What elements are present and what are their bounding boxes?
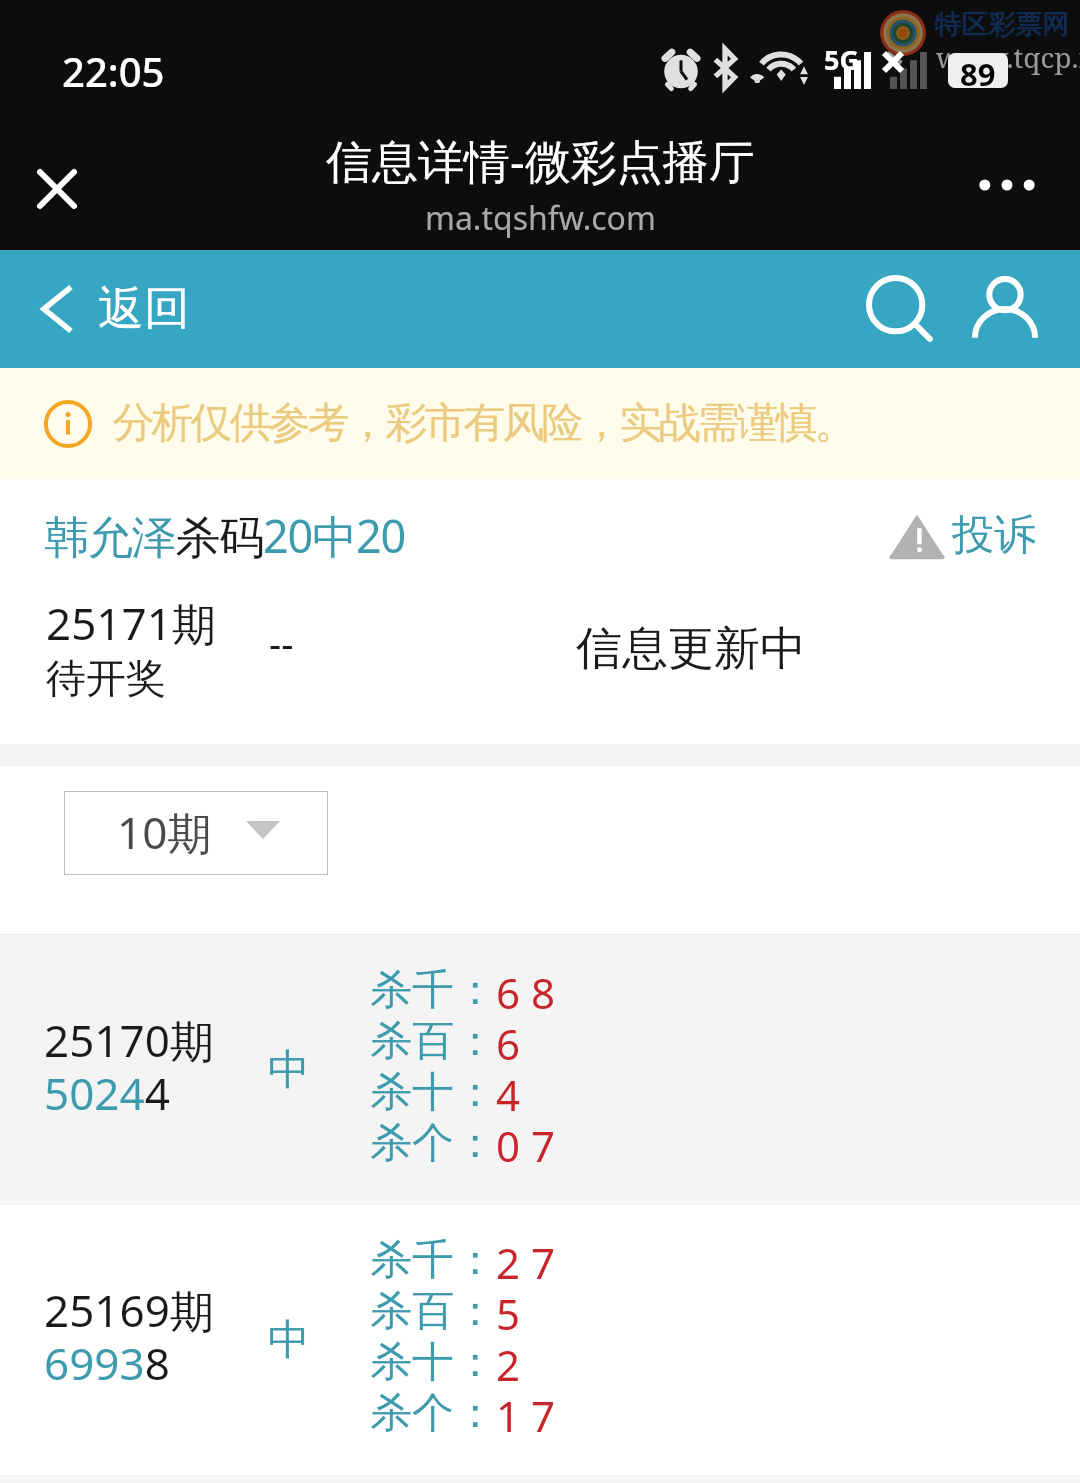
staticText: 5G	[824, 41, 859, 78]
staticText: 5	[496, 1285, 521, 1336]
staticText: 4	[496, 1066, 521, 1117]
staticText: 杀千：	[370, 964, 496, 1015]
button[interactable]: 投诉	[890, 509, 1036, 562]
staticText: 待开奖	[46, 653, 166, 703]
button[interactable]: 返回	[40, 280, 190, 338]
button[interactable]: More options	[964, 142, 1050, 228]
staticText: 22:05	[62, 44, 165, 98]
staticText: 杀十：	[370, 1336, 496, 1387]
staticText: www.tqcp.net	[936, 38, 1080, 76]
staticText: 返回	[98, 280, 190, 338]
staticText: 投诉	[952, 509, 1036, 562]
staticText: 中	[268, 1314, 310, 1367]
staticText: 69938	[44, 1333, 170, 1393]
staticText: 分析仅供参考，彩市有风险，实战需谨慎。	[114, 397, 855, 450]
staticText: ma.tqshfw.com	[425, 196, 656, 240]
staticText: 杀个：	[370, 1387, 496, 1438]
staticText: 杀个：	[370, 1117, 496, 1168]
staticText: 杀十：	[370, 1066, 496, 1117]
staticText: 25171期	[46, 593, 216, 653]
staticText: 6	[496, 1015, 521, 1066]
staticText: 信息详情-微彩点播厅	[326, 129, 755, 192]
button[interactable]: 25169期	[0, 1205, 1080, 1475]
button[interactable]: Close	[14, 146, 100, 232]
button[interactable]: Profile	[961, 265, 1049, 353]
staticText: 杀千：	[370, 1234, 496, 1285]
staticText: 特区彩票网	[934, 8, 1069, 42]
staticText: 6 8	[496, 964, 555, 1015]
staticText: 中	[268, 1044, 310, 1097]
staticText: 2 7	[496, 1234, 555, 1285]
button[interactable]: 25170期	[0, 935, 1080, 1205]
staticText: 50244	[44, 1063, 170, 1123]
staticText: --	[269, 617, 294, 669]
button[interactable]: 10期	[64, 791, 328, 875]
staticText: 89	[960, 53, 996, 88]
button[interactable]: Search	[856, 265, 944, 353]
staticText: 0 7	[496, 1117, 555, 1168]
staticText: 信息更新中	[576, 620, 806, 678]
staticText: 25169期	[44, 1280, 214, 1340]
staticText: 25170期	[44, 1010, 214, 1070]
staticText: 杀百：	[370, 1015, 496, 1066]
staticText: 1 7	[496, 1387, 555, 1438]
staticText: 杀百：	[370, 1285, 496, 1336]
staticText: 10期	[117, 802, 212, 862]
staticText: 2	[496, 1336, 521, 1387]
staticText: 韩允泽杀码20中20	[44, 505, 405, 566]
